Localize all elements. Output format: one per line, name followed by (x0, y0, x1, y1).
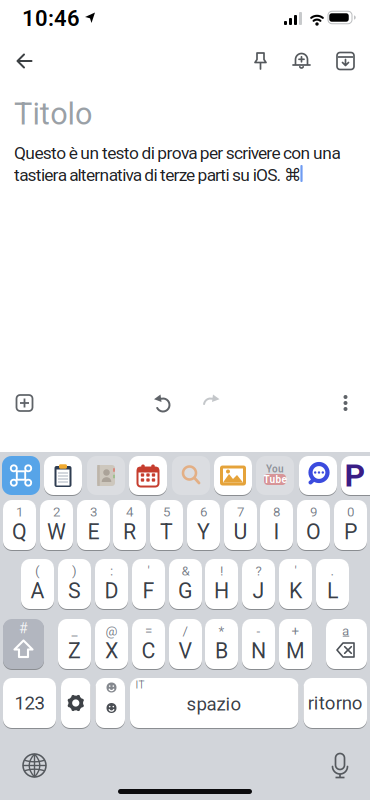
staticText: Q (12, 519, 27, 544)
staticText: Z (68, 638, 81, 663)
staticText: 3 (90, 504, 97, 520)
staticText: tastiera alternativa di terze parti su i… (14, 165, 301, 185)
button[interactable]: ? (242, 558, 275, 610)
button[interactable]: 7 (224, 499, 257, 551)
button[interactable]: _ (58, 618, 91, 670)
button[interactable]: ) (58, 558, 91, 610)
button[interactable]: a (326, 618, 367, 670)
button[interactable]: @ (95, 618, 128, 670)
button[interactable]: Messages (299, 455, 337, 495)
button[interactable]: Reminder (288, 48, 314, 74)
staticText: J (252, 578, 264, 603)
staticText: E (87, 519, 99, 544)
button[interactable]: Archive (333, 49, 357, 73)
staticText: O (306, 519, 321, 544)
staticText: + (291, 623, 299, 639)
button[interactable]: Add (14, 393, 34, 413)
staticText: 4 (126, 504, 133, 520)
button[interactable]: # (3, 618, 44, 670)
button[interactable]: / (169, 618, 202, 670)
button[interactable]: Search (172, 455, 210, 495)
staticText: F (142, 578, 154, 603)
button[interactable]: Photos (214, 455, 252, 495)
button[interactable] (95, 677, 125, 729)
staticText: N (251, 638, 266, 663)
button[interactable]: . (316, 558, 349, 610)
button[interactable]: Pin (248, 49, 272, 73)
staticText: ? (255, 563, 261, 579)
button[interactable]: More options (335, 393, 355, 413)
button[interactable]: ritorno (303, 677, 367, 729)
button[interactable]: 123 (3, 677, 56, 729)
button[interactable]: 2 (40, 499, 73, 551)
staticText: W (47, 519, 66, 544)
staticText: B (215, 638, 228, 663)
staticText: Tube (263, 474, 286, 485)
button[interactable]: 3 (77, 499, 110, 551)
button[interactable]: 4 (113, 499, 146, 551)
staticText: 1 (16, 504, 23, 520)
button[interactable] (61, 677, 90, 729)
staticText: 9 (310, 504, 317, 520)
staticText: Questo è un testo di prova per scrivere … (14, 143, 340, 163)
staticText: A (30, 578, 44, 603)
staticText: Y (197, 519, 210, 544)
button[interactable]: Dictate (330, 752, 350, 778)
button[interactable]: 9 (297, 499, 330, 551)
staticText: IT (135, 679, 144, 691)
staticText: H (214, 578, 229, 603)
button[interactable]: YouTube (256, 455, 294, 495)
button[interactable]: 1 (3, 499, 36, 551)
staticText: R (123, 519, 136, 544)
staticText: 5 (163, 504, 170, 520)
button[interactable]: P app (341, 455, 370, 495)
button[interactable]: ' (132, 558, 165, 610)
staticText: ' (147, 563, 149, 579)
button[interactable]: Clipboard (44, 455, 82, 495)
button[interactable]: Undo (152, 393, 174, 413)
staticText: L (327, 578, 338, 603)
staticText: * (218, 623, 224, 639)
staticText: spazio (186, 693, 241, 715)
button[interactable]: Back (13, 52, 37, 70)
button[interactable]: 8 (260, 499, 293, 551)
staticText: - (256, 623, 260, 639)
staticText: 8 (273, 504, 280, 520)
staticText: @ (105, 623, 117, 639)
button[interactable]: ( (21, 558, 54, 610)
button[interactable]: Command keyboard (2, 455, 40, 495)
button[interactable]: Next keyboard (21, 752, 47, 778)
button[interactable]: Contacts (87, 455, 125, 495)
staticText: a (342, 623, 349, 639)
button[interactable]: 0 (334, 499, 367, 551)
staticText: : (110, 563, 113, 579)
staticText: ! (220, 563, 223, 579)
staticText: T (160, 519, 173, 544)
button[interactable]: : (95, 558, 128, 610)
staticText: 0 (347, 504, 354, 520)
staticText: You (266, 463, 284, 475)
button[interactable]: = (132, 618, 165, 670)
button[interactable]: Calendar (129, 455, 167, 495)
button[interactable]: Redo (199, 393, 221, 413)
staticText: . (330, 563, 334, 579)
button[interactable]: ! (205, 558, 238, 610)
staticText: V (178, 638, 192, 663)
staticText: M (286, 638, 305, 663)
staticText: Titolo (14, 96, 92, 132)
staticText: 6 (200, 504, 207, 520)
staticText: & (181, 563, 189, 579)
button[interactable]: IT (130, 677, 298, 729)
staticText: # (19, 620, 28, 637)
button[interactable]: ' (279, 558, 312, 610)
button[interactable]: - (242, 618, 275, 670)
button[interactable]: + (279, 618, 312, 670)
button[interactable]: 5 (150, 499, 183, 551)
button[interactable]: & (169, 558, 202, 610)
staticText: 2 (53, 504, 60, 520)
button[interactable]: * (205, 618, 238, 670)
button[interactable]: 6 (187, 499, 220, 551)
staticText: U (233, 519, 247, 544)
staticText: ritorno (308, 692, 363, 714)
staticText: C (141, 638, 155, 663)
